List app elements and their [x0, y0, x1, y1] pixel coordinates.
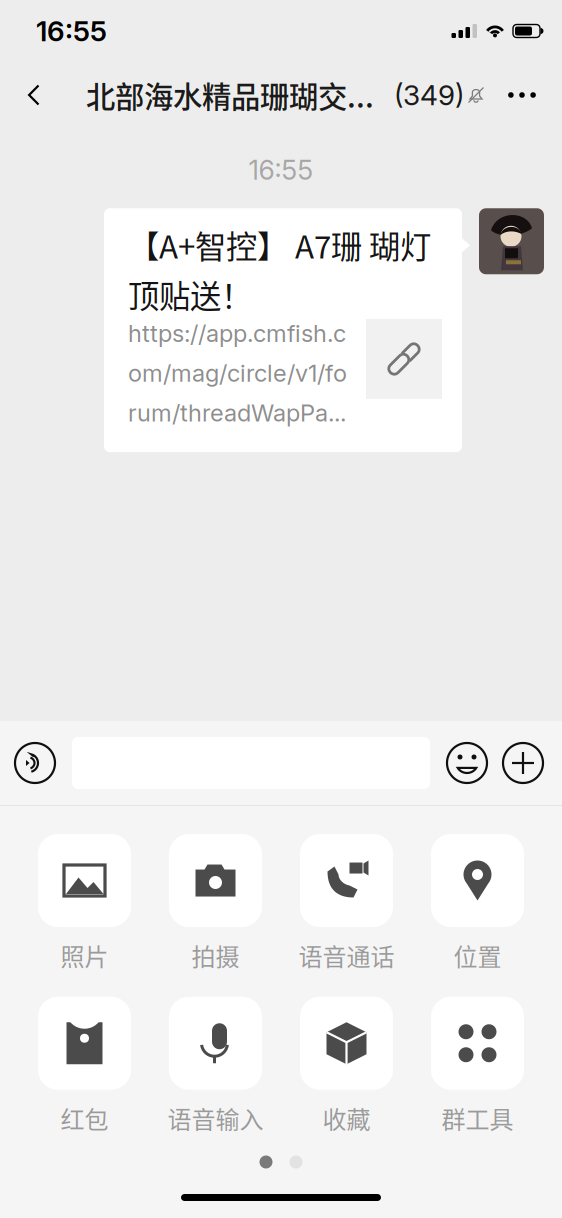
button[interactable]: Voice input	[14, 742, 56, 784]
staticText: rum/threadWapPa...	[128, 398, 346, 427]
staticText: 语音通话	[298, 938, 394, 973]
button[interactable]: 照片	[19, 834, 150, 973]
button[interactable]: 位置	[412, 834, 543, 973]
staticText: (349)	[394, 78, 464, 112]
staticText: 16:55	[36, 14, 107, 48]
staticText: 群工具	[441, 1101, 513, 1136]
button[interactable]: 收藏	[281, 997, 412, 1136]
button[interactable]: More actions	[502, 742, 544, 784]
staticText: 拍摄	[191, 938, 239, 973]
button[interactable]: 红包	[19, 997, 150, 1136]
button[interactable]: 语音输入	[150, 997, 281, 1136]
staticText: 收藏	[322, 1101, 370, 1136]
staticText: 位置	[453, 938, 501, 973]
button[interactable]: Back	[8, 67, 60, 123]
staticText: https://app.cmfish.c	[128, 319, 346, 348]
staticText: 顶贴送！	[128, 272, 252, 317]
staticText: 【A+智控】 A7珊 瑚灯	[128, 222, 431, 268]
staticText: om/mag/circle/v1/fo	[128, 359, 347, 387]
staticText: 16:55	[248, 154, 313, 186]
button[interactable]: 拍摄	[150, 834, 281, 973]
button[interactable]: 语音通话	[281, 834, 412, 973]
staticText: 北部海水精品珊瑚交...	[86, 74, 374, 116]
staticText: 语音输入	[167, 1101, 263, 1136]
staticText: 红包	[60, 1101, 108, 1136]
staticText: 照片	[60, 938, 108, 973]
button[interactable]: Emoji	[446, 742, 488, 784]
button[interactable]: 群工具	[412, 997, 543, 1136]
button[interactable]: More	[494, 67, 550, 123]
